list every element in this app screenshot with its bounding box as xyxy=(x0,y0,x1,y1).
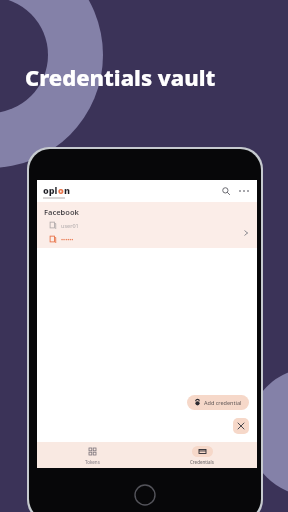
staticText: •••••• xyxy=(61,236,74,243)
staticText: Add credential xyxy=(204,399,242,406)
button[interactable]: Facebook xyxy=(37,202,257,248)
staticText: o xyxy=(58,184,64,196)
staticText: n xyxy=(64,184,71,196)
button[interactable]: Close xyxy=(233,418,249,434)
button[interactable]: Tokens xyxy=(37,442,147,468)
button[interactable]: user01 xyxy=(44,222,79,229)
staticText: user01 xyxy=(61,222,79,229)
staticText: Credentials vault xyxy=(25,62,216,92)
button[interactable]: Add credential xyxy=(187,395,249,410)
button[interactable]: •••••• xyxy=(44,236,74,243)
button[interactable]: Search xyxy=(219,184,233,198)
button[interactable]: Credentials xyxy=(147,442,257,468)
staticText: Tokens xyxy=(85,459,100,465)
staticText: opl xyxy=(43,184,58,196)
staticText: Credentials xyxy=(190,459,214,465)
button[interactable]: More options xyxy=(237,184,251,198)
staticText: Facebook xyxy=(44,207,79,217)
